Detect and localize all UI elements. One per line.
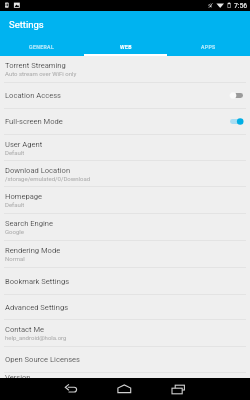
button[interactable]: Bookmark Settings [0,268,250,295]
staticText: Full-screen Mode [5,117,63,126]
button[interactable]: Torrent Streaming [0,56,250,83]
staticText: Contact Me [5,325,45,334]
button[interactable]: Home [106,378,143,400]
staticText: Settings [9,19,44,30]
button[interactable]: Rendering Mode [0,241,250,268]
staticText: Rendering Mode [5,246,61,255]
staticText: APPS [201,44,216,50]
button[interactable]: Location Access [0,83,250,109]
staticText: Search Engine [5,219,54,228]
button[interactable]: Full-screen Mode [0,109,250,135]
button[interactable]: WEB [84,33,167,56]
staticText: Normal [5,255,25,262]
button[interactable]: Advanced Settings [0,295,250,320]
staticText: Default [5,201,25,208]
staticText: Default [5,149,25,156]
staticText: Bookmark Settings [5,277,70,286]
button[interactable]: Download Location [0,161,250,187]
button[interactable]: Recent apps [160,378,197,400]
button[interactable]: GENERAL [0,33,84,56]
button[interactable]: Contact Me [0,320,250,347]
staticText: help_android@hola.org [5,334,67,341]
staticText: Download Location [5,166,71,175]
button[interactable]: Open Source Licenses [0,347,250,373]
button[interactable]: User Agent [0,135,250,161]
staticText: /storage/emulated/0/Download [5,175,91,182]
staticText: Auto stream over WiFi only [5,70,77,77]
staticText: GENERAL [29,44,55,50]
button[interactable]: Back [53,378,90,400]
button[interactable]: Version [0,373,250,378]
staticText: Open Source Licenses [5,355,81,364]
staticText: Version [5,373,31,378]
button[interactable]: Search Engine [0,214,250,241]
staticText: Google [5,228,24,235]
staticText: Homepage [5,192,43,201]
staticText: Location Access [5,91,62,100]
staticText: WEB [120,44,132,50]
button[interactable]: APPS [167,33,250,56]
staticText: 7:56 [234,2,248,10]
staticText: Advanced Settings [5,303,69,312]
staticText: User Agent [5,140,43,149]
button[interactable]: Homepage [0,187,250,214]
staticText: Torrent Streaming [5,61,66,70]
